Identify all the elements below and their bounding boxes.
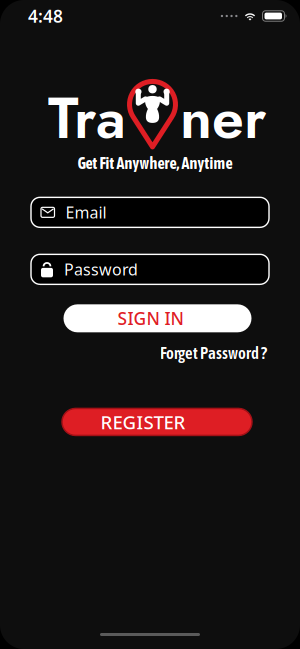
staticText: Password	[64, 259, 138, 280]
button[interactable]: SIGN IN	[63, 304, 251, 332]
staticText: ner	[180, 77, 266, 159]
staticText: Tra	[48, 77, 126, 159]
button[interactable]: Forget Password ?	[160, 343, 267, 362]
staticText: Get Fit Anywhere, Anytime	[77, 154, 232, 172]
button[interactable]: Password	[31, 254, 269, 284]
staticText: SIGN IN	[117, 307, 183, 330]
button[interactable]: Email	[31, 197, 269, 227]
button[interactable]: REGISTER	[62, 408, 252, 435]
staticText: Email	[65, 202, 106, 223]
staticText: 4:48	[28, 4, 63, 27]
staticText: Forget Password ?	[160, 343, 267, 362]
staticText: REGISTER	[100, 409, 185, 434]
